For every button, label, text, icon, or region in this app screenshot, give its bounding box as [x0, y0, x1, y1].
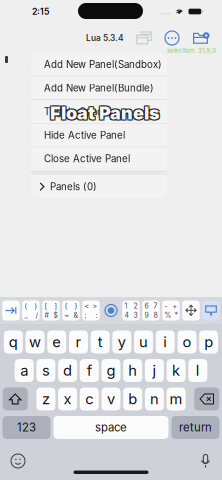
staticText: b — [128, 390, 137, 408]
button[interactable]: s — [36, 359, 55, 382]
button[interactable]: g — [101, 359, 120, 382]
button[interactable]: Delete — [194, 387, 219, 410]
button[interactable]: w — [25, 330, 44, 353]
staticText: Panels (0) — [50, 181, 97, 192]
staticText: m — [170, 390, 183, 408]
staticText: Float Panels — [49, 103, 159, 125]
staticText: Float Panels — [49, 101, 159, 123]
staticText: 123 — [17, 421, 36, 434]
staticText: < — [84, 302, 89, 310]
staticText: i — [163, 333, 167, 351]
staticText: c — [85, 390, 93, 408]
button[interactable]: m — [167, 387, 186, 410]
button[interactable]: Hide Active Panel — [31, 124, 167, 147]
staticText: - — [164, 302, 167, 310]
staticText: : — [95, 311, 97, 319]
staticText: > — [92, 302, 97, 310]
staticText: v — [107, 390, 115, 408]
button[interactable]: p — [199, 330, 218, 353]
button[interactable]: u — [134, 330, 153, 353]
button[interactable]: Add New Panel(Sandbox) — [31, 53, 167, 76]
button[interactable]: Toggle Opacity — [31, 100, 167, 123]
staticText: t — [98, 333, 103, 351]
staticText: d — [63, 362, 72, 379]
staticText: ) — [34, 302, 37, 310]
button[interactable]: Suggestions — [202, 300, 220, 320]
button[interactable]: r — [69, 330, 88, 353]
button[interactable]: e — [47, 330, 66, 353]
staticText: z — [42, 390, 50, 408]
button[interactable]: k — [167, 359, 186, 382]
button[interactable]: Add New Panel(Bundle) — [31, 77, 167, 99]
staticText: a — [20, 362, 28, 379]
staticText: _ — [24, 311, 27, 319]
button[interactable]: Close Active Panel — [31, 147, 167, 170]
staticText: Lua 5.3.4 — [86, 33, 124, 43]
staticText: Hide Active Panel — [44, 129, 125, 141]
button[interactable]: n — [145, 387, 164, 410]
button[interactable]: ( — [22, 300, 40, 320]
button[interactable]: Arrows — [182, 300, 200, 320]
staticText: l — [196, 362, 200, 379]
staticText: 8 — [153, 311, 157, 319]
button[interactable]: Panels — [135, 28, 153, 48]
staticText: space — [95, 421, 127, 434]
staticText: Float Panels — [50, 102, 160, 124]
button[interactable]: Tab — [2, 300, 20, 320]
staticText: } — [74, 302, 77, 310]
button[interactable]: Dictate — [195, 449, 222, 473]
staticText: Float Panels — [51, 103, 161, 125]
staticText: / — [35, 311, 37, 319]
staticText: ; — [84, 311, 86, 319]
staticText: Float Panels — [51, 101, 161, 123]
button[interactable]: return — [171, 416, 219, 439]
button[interactable]: < — [82, 300, 100, 320]
staticText: s — [42, 362, 50, 379]
button[interactable]: x — [58, 387, 77, 410]
button[interactable]: Shift — [3, 387, 28, 410]
button[interactable]: Emoji — [0, 449, 31, 473]
staticText: 2:15 — [32, 6, 49, 17]
button[interactable]: - — [162, 300, 180, 320]
button[interactable]: Files — [191, 28, 210, 48]
staticText: Toggle Opacity — [44, 106, 113, 117]
button[interactable]: j — [145, 359, 164, 382]
button[interactable]: More — [164, 28, 180, 48]
staticText: o — [182, 333, 191, 351]
button[interactable]: t — [91, 330, 110, 353]
staticText: ( — [24, 302, 27, 310]
button[interactable]: 1 — [122, 300, 140, 320]
button[interactable]: { — [62, 300, 80, 320]
button[interactable]: l — [188, 359, 207, 382]
button[interactable]: v — [101, 387, 120, 410]
button[interactable]: z — [36, 387, 55, 410]
button[interactable]: i — [156, 330, 175, 353]
button[interactable]: 6 — [142, 300, 160, 320]
button[interactable]: 123 — [2, 416, 50, 439]
button[interactable]: d — [58, 359, 77, 382]
staticText: Add New Panel(Bundle) — [44, 82, 154, 94]
button[interactable]: a — [15, 359, 34, 382]
staticText: Add New Panel(Sandbox) — [44, 58, 162, 70]
staticText: + — [172, 302, 177, 310]
button[interactable]: h — [123, 359, 142, 382]
button[interactable]: y — [112, 330, 131, 353]
staticText: ] — [55, 302, 58, 310]
staticText: r — [75, 333, 81, 351]
button[interactable]: Panels (0) — [31, 175, 167, 198]
staticText: k — [172, 362, 180, 379]
staticText: [ — [44, 302, 47, 310]
button[interactable]: o — [177, 330, 196, 353]
button[interactable]: c — [80, 387, 99, 410]
staticText: 7 — [153, 302, 157, 310]
button[interactable]: q — [4, 330, 23, 353]
button[interactable]: space — [53, 416, 168, 439]
staticText: ~ — [64, 311, 69, 319]
button[interactable]: [ — [42, 300, 60, 320]
staticText: n — [150, 390, 159, 408]
button[interactable]: f — [80, 359, 99, 382]
button[interactable]: b — [123, 387, 142, 410]
staticText: selection: 31,9,0 — [167, 47, 216, 54]
staticText: u — [139, 333, 148, 351]
button[interactable]: Cursor — [102, 300, 120, 320]
